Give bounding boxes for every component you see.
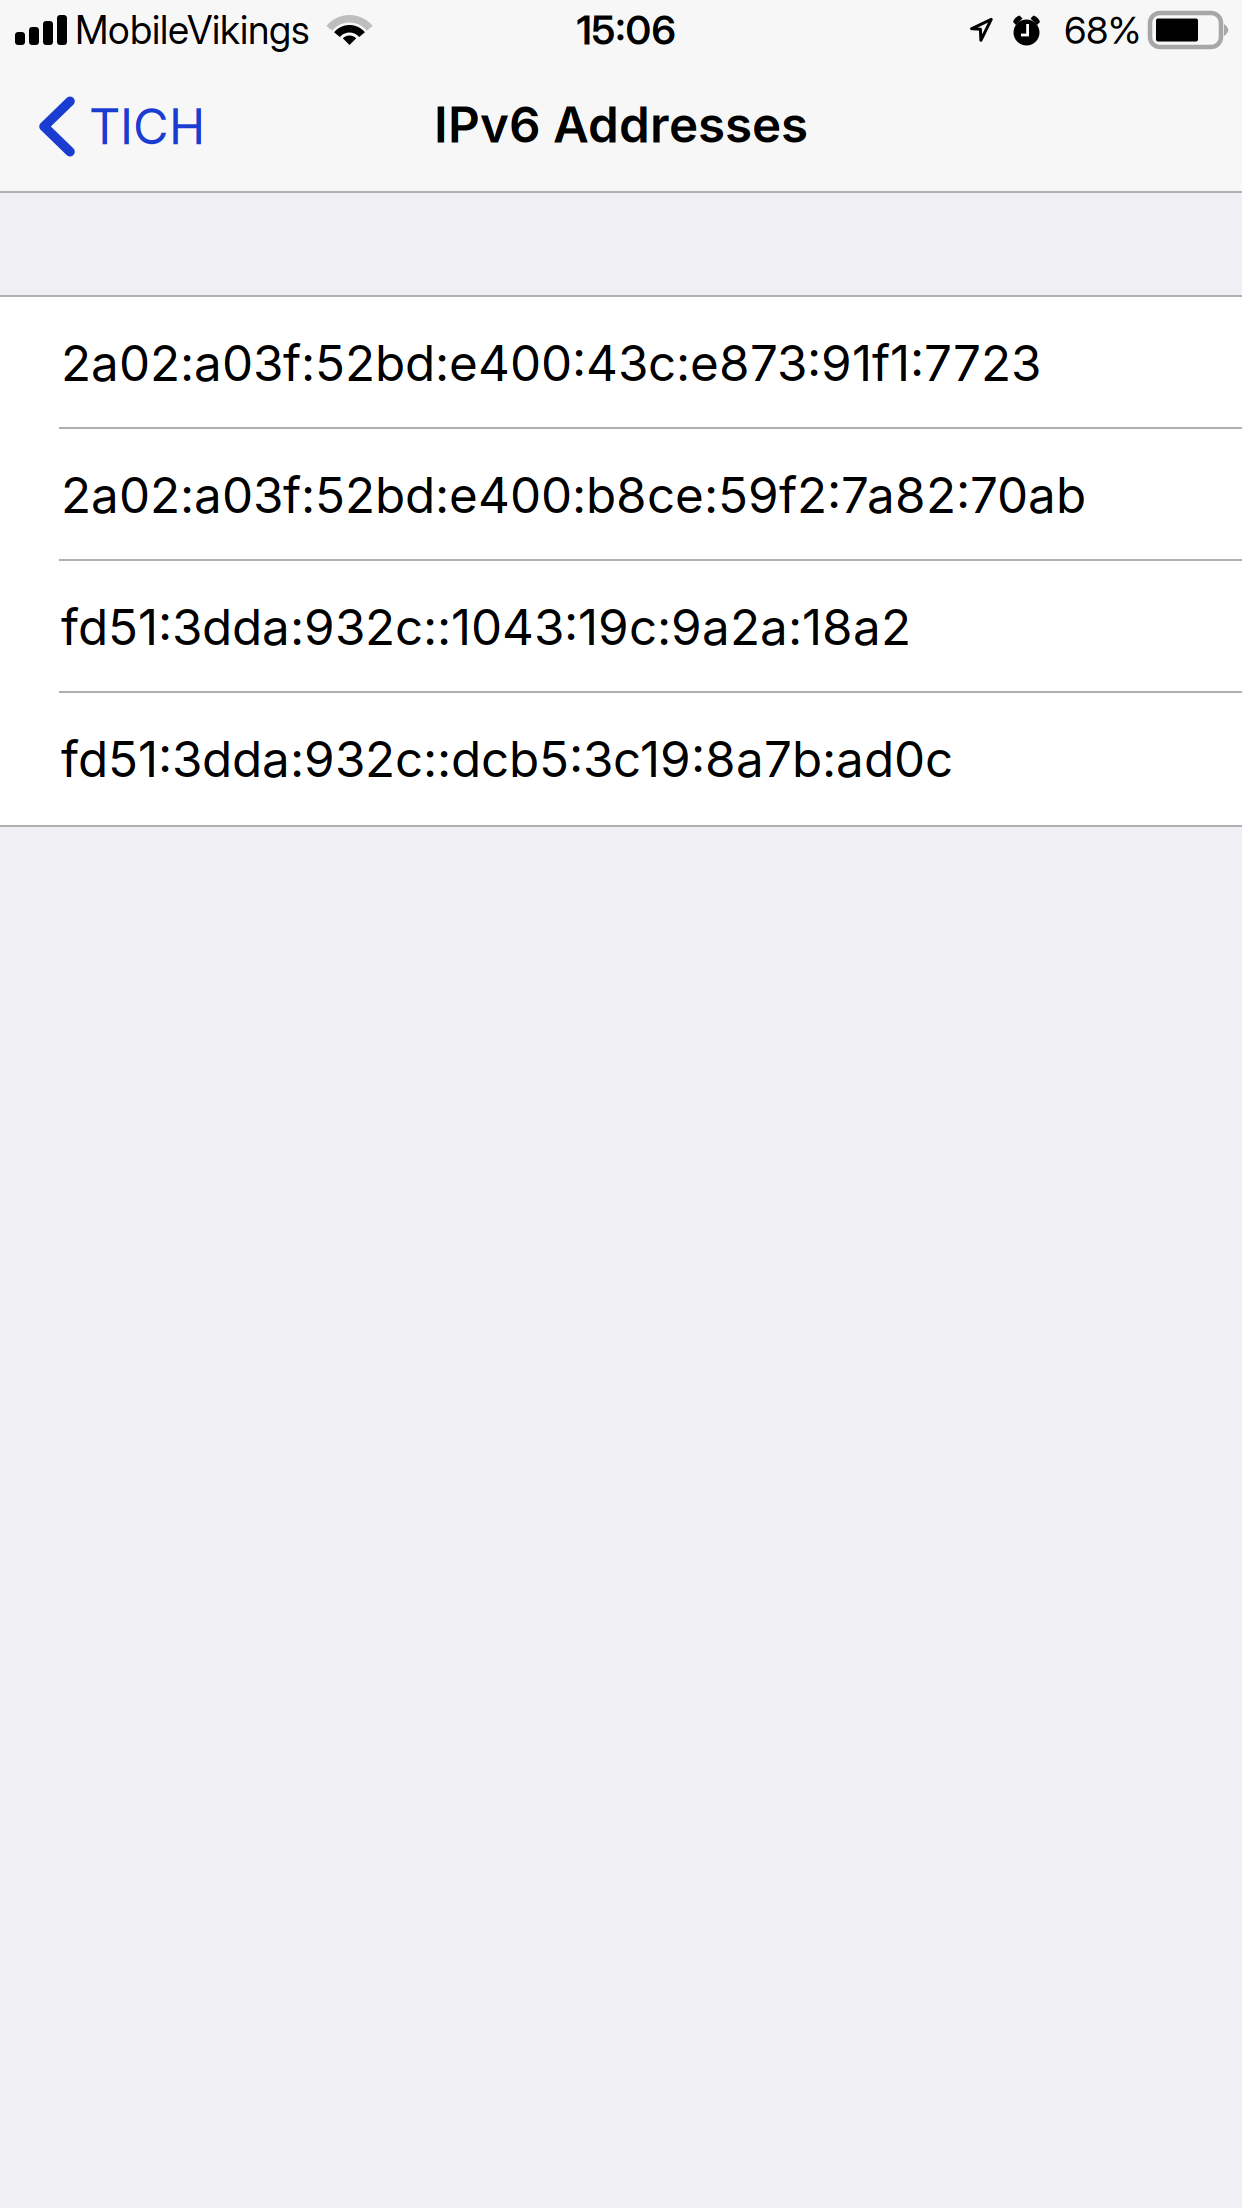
button[interactable]: 2a02:a03f:52bd:e400:b8ce:59f2:7a82:70ab [0,429,1242,561]
staticText: fd51:3dda:932c::1043:19c:9a2a:18a2 [61,597,911,657]
staticText: TICH [89,97,205,156]
staticText: MobileVikings [75,7,310,53]
staticText: IPv6 Addresses [434,95,808,154]
staticText: 2a02:a03f:52bd:e400:b8ce:59f2:7a82:70ab [61,465,1086,525]
button[interactable]: fd51:3dda:932c::1043:19c:9a2a:18a2 [0,561,1242,693]
staticText: fd51:3dda:932c::dcb5:3c19:8a7b:ad0c [61,729,953,789]
button[interactable]: Back to TICH [0,60,225,192]
staticText: 2a02:a03f:52bd:e400:43c:e873:91f1:7723 [61,333,1041,393]
staticText: 15:06 [576,6,675,54]
button[interactable]: fd51:3dda:932c::dcb5:3c19:8a7b:ad0c [0,693,1242,825]
button[interactable]: 2a02:a03f:52bd:e400:43c:e873:91f1:7723 [0,297,1242,429]
staticText: 68% [1064,7,1141,53]
